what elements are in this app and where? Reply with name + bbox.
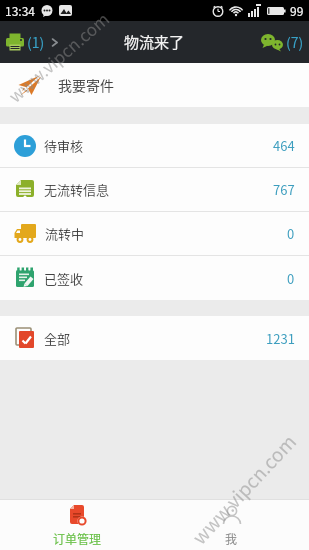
staticText: 我要寄件: [58, 75, 114, 95]
button[interactable]: (1): [5, 32, 59, 52]
staticText: 464: [273, 136, 295, 155]
button[interactable]: 待审核: [0, 124, 309, 167]
staticText: 99: [290, 2, 304, 19]
button[interactable]: 流转中: [0, 212, 309, 255]
staticText: 全部: [44, 329, 71, 348]
staticText: 767: [273, 180, 295, 199]
staticText: 1231: [266, 329, 295, 348]
button[interactable]: 全部: [0, 316, 309, 360]
staticText: (1): [27, 32, 45, 52]
button[interactable]: 我: [154, 500, 309, 550]
button[interactable]: 我要寄件: [0, 63, 309, 107]
staticText: 无流转信息: [44, 180, 110, 199]
staticText: 物流来了: [124, 31, 185, 53]
button[interactable]: (7): [260, 32, 304, 52]
staticText: 已签收: [44, 269, 84, 288]
staticText: 我: [225, 530, 238, 547]
button[interactable]: 已签收: [0, 256, 309, 300]
button[interactable]: 无流转信息: [0, 168, 309, 211]
staticText: 0: [287, 224, 295, 243]
staticText: 待审核: [44, 136, 84, 155]
staticText: 0: [287, 269, 295, 288]
staticText: www.vipcn.com: [2, 5, 115, 108]
staticText: www.vipcn.com: [185, 428, 302, 550]
staticText: (7): [286, 32, 304, 52]
staticText: 流转中: [45, 224, 85, 243]
staticText: 13:34: [5, 2, 35, 19]
button[interactable]: 订单管理: [0, 500, 154, 550]
staticText: 订单管理: [53, 530, 102, 547]
